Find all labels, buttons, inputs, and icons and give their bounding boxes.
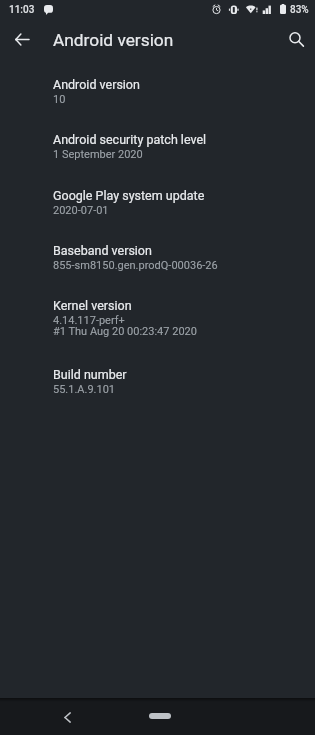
staticText: 855-sm8150.gen.prodQ-00036-26: [53, 259, 218, 272]
button[interactable]: Kernel version: [0, 285, 315, 354]
staticText: Kernel version: [53, 298, 132, 313]
staticText: 1 September 2020: [53, 148, 143, 161]
button[interactable]: Navigate up: [6, 23, 38, 55]
button[interactable]: Google Play system update: [0, 175, 315, 230]
button[interactable]: Search: [280, 23, 312, 55]
staticText: Google Play system update: [53, 188, 205, 203]
staticText: 2020-07-01: [53, 204, 109, 217]
staticText: 10: [53, 93, 66, 106]
staticText: Android version: [53, 30, 174, 50]
staticText: 55.1.A.9.101: [53, 383, 116, 396]
button[interactable]: Android version: [0, 64, 315, 119]
staticText: Android version: [53, 77, 140, 92]
staticText: 83%: [290, 4, 309, 16]
staticText: 4.14.117-perf+: [53, 314, 125, 327]
staticText: 11:03: [9, 4, 35, 16]
button[interactable]: Back: [51, 703, 83, 731]
staticText: Build number: [53, 367, 127, 382]
button[interactable]: Home: [134, 703, 186, 731]
staticText: #1 Thu Aug 20 00:23:47 2020: [53, 325, 197, 338]
staticText: Android security patch level: [53, 132, 207, 147]
button[interactable]: Baseband version: [0, 230, 315, 285]
button[interactable]: Build number: [0, 354, 315, 409]
button[interactable]: Android security patch level: [0, 119, 315, 174]
staticText: Baseband version: [53, 243, 152, 258]
